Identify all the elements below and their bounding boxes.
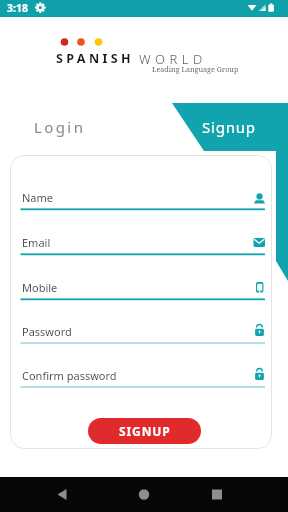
staticText: Mobile bbox=[22, 280, 58, 295]
button[interactable] bbox=[193, 477, 241, 512]
staticText: 3:18 bbox=[7, 1, 28, 15]
staticText: Password bbox=[22, 324, 72, 339]
staticText: Signup bbox=[202, 117, 256, 137]
staticText: Name bbox=[22, 190, 54, 205]
button[interactable]: Signup bbox=[175, 103, 283, 151]
button[interactable] bbox=[38, 477, 86, 512]
button[interactable] bbox=[120, 477, 168, 512]
staticText: SPANISH bbox=[56, 50, 134, 67]
button[interactable]: Login bbox=[20, 108, 100, 146]
button[interactable]: Password bbox=[20, 320, 266, 344]
button[interactable]: Mobile bbox=[20, 276, 266, 300]
staticText: WORLD bbox=[139, 50, 207, 68]
button[interactable]: Name bbox=[20, 186, 266, 210]
staticText: Leading Language Group bbox=[152, 64, 239, 74]
staticText: SIGNUP bbox=[119, 423, 171, 439]
staticText: Confirm password bbox=[22, 368, 117, 383]
staticText: Email bbox=[22, 235, 51, 250]
staticText: Login bbox=[34, 117, 86, 137]
button[interactable]: SIGNUP bbox=[88, 418, 201, 444]
button[interactable]: Email bbox=[20, 231, 266, 255]
button[interactable]: Confirm password bbox=[20, 364, 266, 388]
